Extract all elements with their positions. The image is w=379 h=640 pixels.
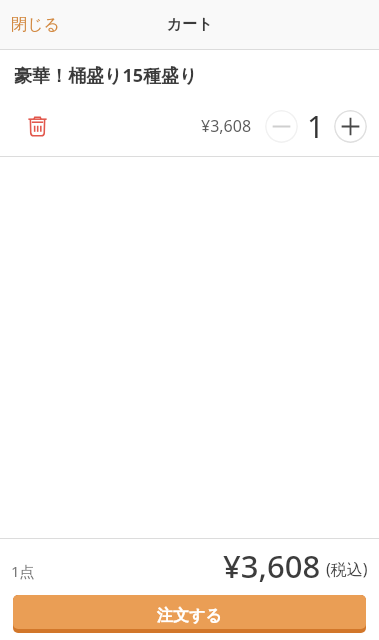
button[interactable]: 数量を増やす bbox=[334, 110, 367, 143]
staticText: (税込) bbox=[326, 558, 368, 580]
staticText: 注文する bbox=[157, 606, 222, 626]
button[interactable]: 注文する bbox=[13, 595, 366, 633]
staticText: ¥3,608 bbox=[223, 545, 321, 587]
staticText: カート bbox=[167, 15, 213, 34]
button[interactable]: 閉じる bbox=[0, 1, 71, 49]
button[interactable]: 削除 bbox=[19, 108, 55, 144]
staticText: 閉じる bbox=[11, 15, 60, 35]
staticText: 1点 bbox=[11, 561, 35, 581]
staticText: 豪華！桶盛り15種盛り bbox=[14, 63, 198, 88]
button[interactable]: 豪華！桶盛り15種盛り bbox=[0, 50, 379, 88]
staticText: 1 bbox=[307, 106, 321, 147]
button[interactable]: 数量を減らす bbox=[265, 110, 298, 143]
staticText: ¥3,608 bbox=[201, 115, 252, 137]
